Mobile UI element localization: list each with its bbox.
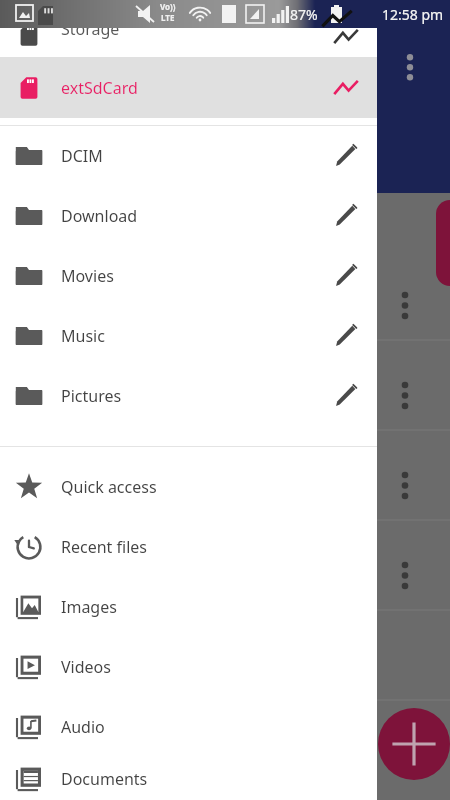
button[interactable]: Add (378, 708, 450, 780)
button[interactable]: Recent files (0, 517, 377, 577)
button[interactable]: DCIM (0, 126, 377, 186)
staticText: DCIM (61, 145, 103, 167)
staticText: Download (61, 205, 138, 227)
staticText: 12:58 pm (382, 5, 444, 24)
staticText: Images (61, 596, 117, 618)
staticText: Movies (61, 265, 114, 287)
staticText: Pictures (61, 385, 122, 407)
staticText: 87% (290, 5, 318, 24)
staticText: Quick access (61, 476, 157, 498)
button[interactable]: Download (0, 186, 377, 246)
staticText: extSdCard (61, 77, 138, 99)
button[interactable]: Documents (0, 757, 377, 800)
button[interactable]: Images (0, 577, 377, 637)
button[interactable]: Music (0, 306, 377, 366)
staticText: Music (61, 325, 105, 347)
staticText: Audio (61, 716, 105, 738)
staticText: Documents (61, 768, 148, 790)
button[interactable]: More options (398, 44, 422, 88)
button[interactable]: Quick access (0, 457, 377, 517)
staticText: Vo)) (160, 1, 176, 12)
staticText: Videos (61, 656, 111, 678)
button[interactable]: Storage (0, 0, 377, 57)
staticText: LTE (161, 12, 175, 23)
button[interactable]: Pictures (0, 366, 377, 426)
button[interactable]: Audio (0, 697, 377, 757)
button[interactable]: Videos (0, 637, 377, 697)
staticText: Recent files (61, 536, 147, 558)
staticText: Storage (61, 18, 120, 40)
button[interactable]: extSdCard (0, 57, 377, 118)
button[interactable]: Movies (0, 246, 377, 306)
